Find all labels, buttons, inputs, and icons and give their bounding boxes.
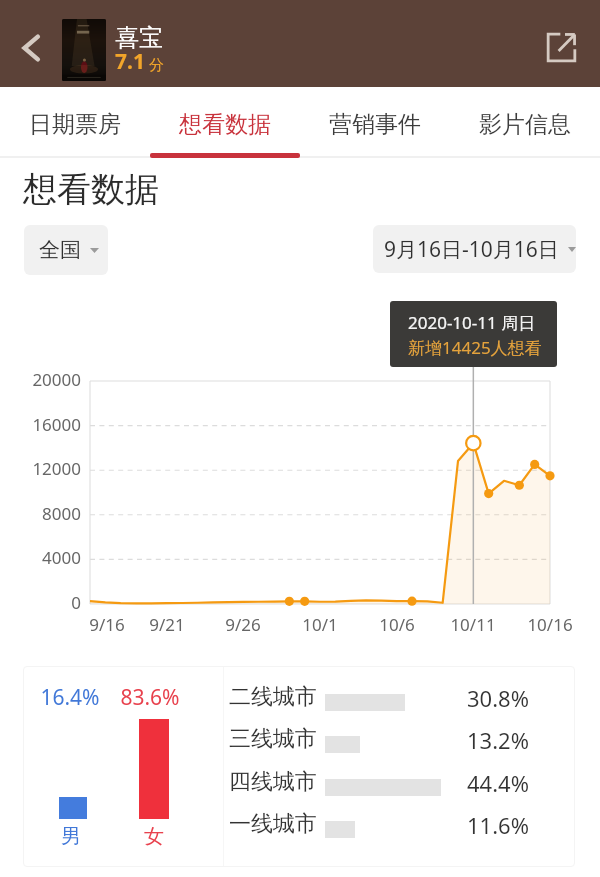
button[interactable]: 一线城市: [229, 805, 534, 847]
button[interactable]: 四线城市: [229, 763, 534, 805]
staticText: 日期票房: [29, 110, 121, 139]
staticText: 16000: [0, 413, 81, 436]
staticText: 7.1: [115, 47, 145, 76]
staticText: 9/16: [67, 613, 147, 636]
staticText: 想看数据: [179, 110, 271, 139]
staticText: 想看数据: [23, 168, 159, 211]
staticText: 8000: [0, 502, 81, 525]
button[interactable]: 9月16日-10月16日: [373, 225, 576, 273]
staticText: 分: [145, 54, 164, 74]
button[interactable]: 日期票房: [0, 87, 150, 159]
button[interactable]: Share: [522, 4, 600, 91]
staticText: 营销事件: [329, 110, 421, 139]
staticText: 新增14425人想看: [408, 336, 542, 359]
staticText: 二线城市: [229, 683, 317, 711]
staticText: 女: [109, 824, 199, 849]
staticText: 4000: [0, 546, 81, 569]
staticText: 12000: [0, 457, 81, 480]
button[interactable]: 全国: [24, 225, 108, 275]
staticText: 一线城市: [229, 810, 317, 838]
staticText: 全国: [39, 237, 81, 263]
button[interactable]: 营销事件: [300, 87, 450, 159]
staticText: 喜宝: [115, 23, 163, 53]
staticText: 10/1: [280, 613, 360, 636]
staticText: 三线城市: [229, 725, 317, 753]
staticText: 9月16日-10月16日: [384, 235, 559, 264]
staticText: 44.4%: [467, 768, 529, 798]
button[interactable]: 想看数据: [150, 87, 300, 159]
staticText: 10/11: [433, 613, 513, 636]
staticText: 83.6%: [105, 683, 195, 712]
staticText: 13.2%: [467, 725, 529, 755]
staticText: 9/26: [203, 613, 283, 636]
staticText: 30.8%: [467, 683, 529, 713]
staticText: 0: [0, 591, 81, 614]
button[interactable]: 16.4%: [23, 666, 223, 867]
button[interactable]: 三线城市: [229, 720, 534, 762]
staticText: 影片信息: [479, 110, 571, 139]
button[interactable]: Back: [0, 4, 62, 91]
button[interactable]: 影片信息: [450, 87, 600, 159]
staticText: 16.4%: [25, 683, 115, 712]
staticText: 10/6: [357, 613, 437, 636]
staticText: 四线城市: [229, 768, 317, 796]
staticText: 9/21: [127, 613, 207, 636]
staticText: 20000: [0, 368, 81, 391]
button[interactable]: 二线城市: [229, 678, 534, 720]
staticText: 2020-10-11 周日: [408, 311, 536, 334]
staticText: 11.6%: [467, 810, 529, 840]
staticText: 10/16: [510, 613, 590, 636]
staticText: 男: [26, 824, 116, 849]
